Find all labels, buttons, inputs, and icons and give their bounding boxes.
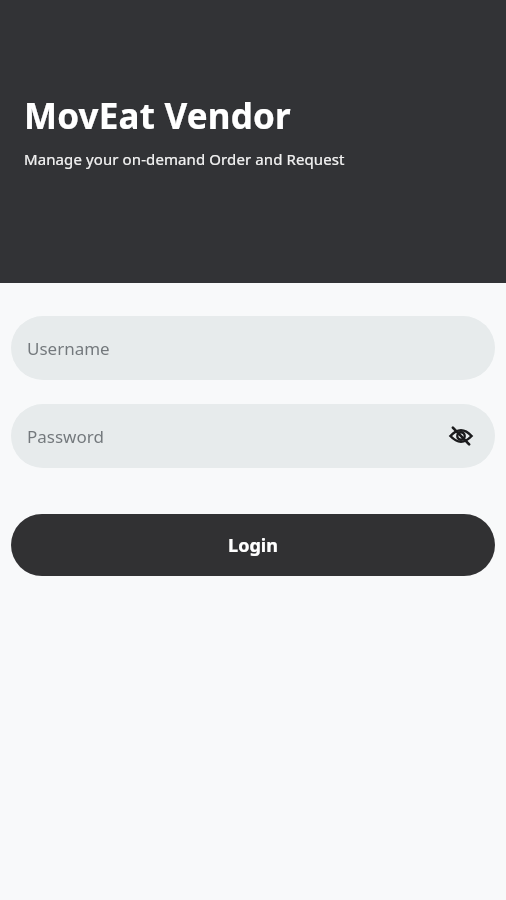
button[interactable]: Password xyxy=(11,404,495,468)
staticText: Manage your on-demand Order and Request xyxy=(24,149,345,169)
button[interactable]: Toggle password visibility xyxy=(448,423,474,449)
staticText: Password xyxy=(27,425,104,448)
button[interactable]: Username xyxy=(11,316,495,380)
staticText: Username xyxy=(27,337,110,360)
staticText: MovEat Vendor xyxy=(24,92,291,140)
staticText: Login xyxy=(228,533,278,558)
button[interactable]: Login xyxy=(11,514,495,576)
